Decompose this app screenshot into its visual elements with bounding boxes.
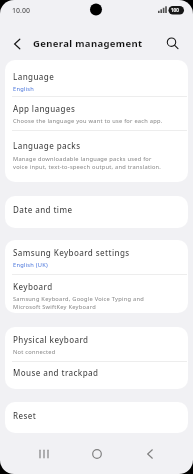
staticText: Manage downloadable language packs used … [13, 155, 162, 171]
button[interactable]: Language packs [5, 131, 188, 182]
staticText: Date and time [13, 204, 73, 215]
button[interactable] [164, 35, 182, 53]
button[interactable]: Date and time [5, 196, 188, 228]
staticText: Choose the language you want to use for … [13, 117, 163, 125]
staticText: Not connected [13, 348, 56, 356]
button[interactable]: Keyboard [5, 275, 188, 313]
staticText: English (UK) [13, 261, 48, 269]
staticText: Mouse and trackpad [13, 367, 99, 378]
staticText: English [13, 85, 35, 93]
button[interactable]: Reset [5, 402, 188, 433]
staticText: Language [13, 71, 55, 82]
button[interactable]: Physical keyboard [5, 327, 188, 361]
staticText: App languages [13, 103, 76, 114]
staticText: General management [33, 37, 143, 50]
button[interactable] [8, 35, 26, 53]
staticText: Samsung Keyboard, Google Voice Typing an… [13, 295, 144, 311]
button[interactable]: Language [5, 60, 188, 96]
button[interactable] [32, 442, 56, 466]
staticText: Keyboard [13, 281, 53, 292]
button[interactable] [85, 442, 109, 466]
staticText: 10.00 [12, 6, 30, 16]
staticText: Physical keyboard [13, 334, 89, 345]
button[interactable]: Samsung Keyboard settings [5, 240, 188, 274]
button[interactable]: Mouse and trackpad [5, 362, 188, 389]
staticText: Reset [13, 410, 37, 421]
staticText: Samsung Keyboard settings [13, 247, 130, 258]
staticText: 100 [171, 7, 179, 13]
staticText: Language packs [13, 140, 81, 151]
button[interactable] [138, 442, 162, 466]
button[interactable]: App languages [5, 97, 188, 130]
